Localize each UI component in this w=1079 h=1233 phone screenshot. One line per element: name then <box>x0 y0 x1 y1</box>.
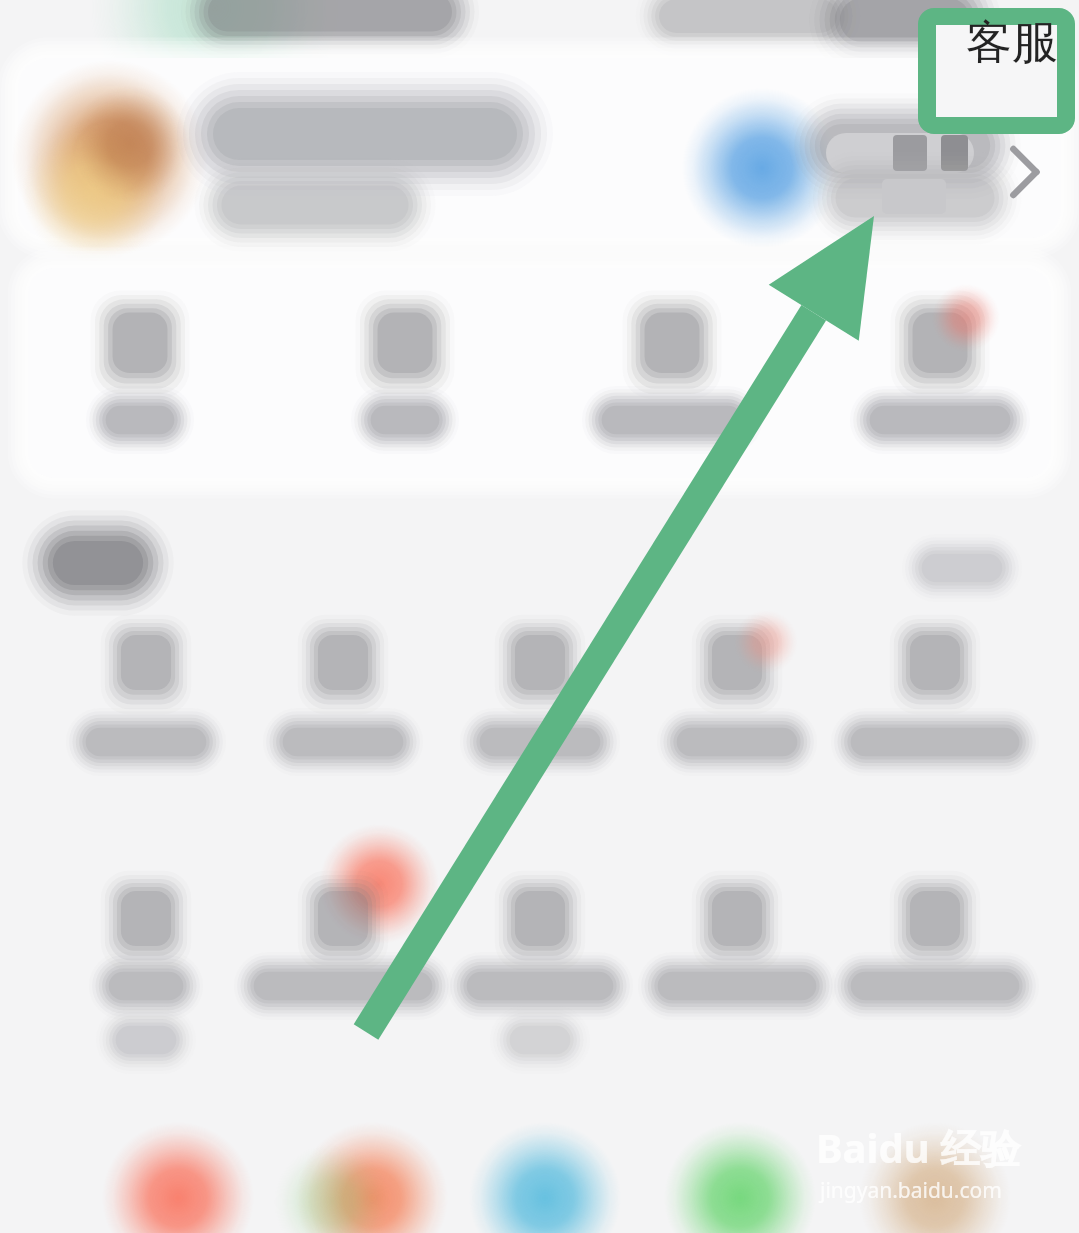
staticText: jingyan.baidu.com <box>820 1176 1002 1205</box>
button[interactable]: 客服 customer service highlighted <box>918 8 1075 134</box>
staticText: Baidu 经验 <box>816 1120 1021 1175</box>
staticText: 客服 <box>966 14 1058 72</box>
